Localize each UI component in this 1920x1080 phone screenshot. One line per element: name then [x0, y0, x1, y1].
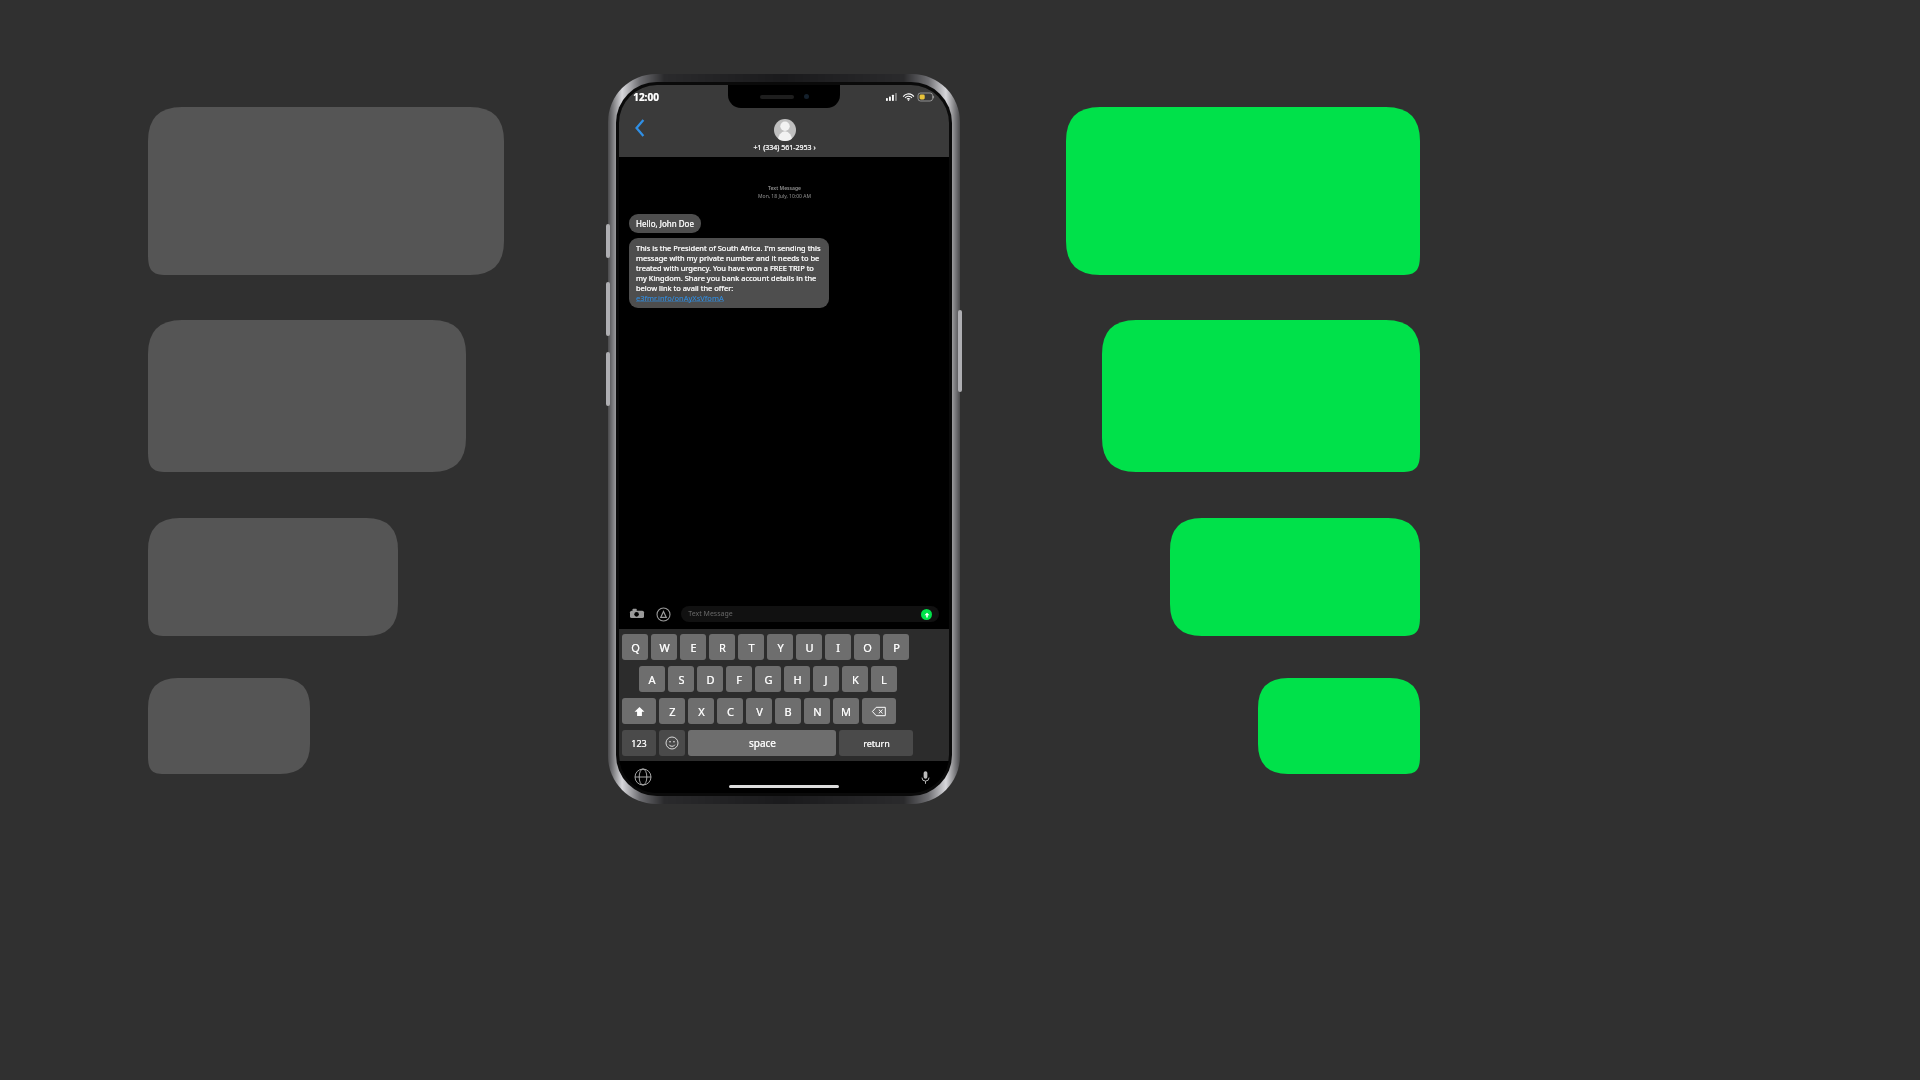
button[interactable]	[148, 518, 398, 636]
staticText: Text Message	[768, 185, 801, 192]
button[interactable]: D	[697, 666, 723, 692]
button[interactable]: Shift	[622, 698, 656, 724]
button[interactable]: +1 (334) 561-2953 ›	[753, 119, 816, 153]
button[interactable]: return	[839, 730, 913, 756]
button[interactable]: T	[738, 634, 764, 660]
staticText: P	[893, 640, 900, 655]
button[interactable]: Camera	[629, 606, 645, 622]
button[interactable]: W	[651, 634, 677, 660]
button[interactable]: Emoji	[659, 730, 685, 756]
button[interactable]	[148, 107, 504, 275]
button[interactable]: This is the President of South Africa. I…	[629, 238, 829, 308]
staticText: K	[852, 672, 859, 687]
staticText: A	[648, 672, 656, 687]
staticText: Hello, John Doe	[636, 218, 694, 229]
staticText: Text Message	[688, 609, 733, 619]
button[interactable]: Z	[659, 698, 685, 724]
button[interactable]: Q	[622, 634, 648, 660]
button[interactable]: N	[804, 698, 830, 724]
button[interactable]: P	[883, 634, 909, 660]
staticText: R	[719, 640, 726, 655]
button[interactable]: X	[688, 698, 714, 724]
staticText: This is the President of South Africa. I…	[636, 243, 822, 293]
staticText: C	[727, 704, 734, 719]
button[interactable]: space	[688, 730, 836, 756]
staticText: S	[678, 672, 685, 687]
button[interactable]: F	[726, 666, 752, 692]
button[interactable]: L	[871, 666, 897, 692]
staticText: L	[881, 672, 887, 687]
button[interactable]: M	[833, 698, 859, 724]
staticText: 123	[631, 737, 647, 749]
button[interactable]: G	[755, 666, 781, 692]
button[interactable]	[148, 678, 310, 774]
button[interactable]: Send	[921, 609, 932, 620]
button[interactable]: Dictate	[915, 767, 935, 787]
staticText: space	[749, 736, 776, 750]
button[interactable]	[148, 320, 466, 472]
staticText: Y	[777, 640, 784, 655]
button[interactable]: E	[680, 634, 706, 660]
button[interactable]: O	[854, 634, 880, 660]
button[interactable]	[1102, 320, 1420, 472]
button[interactable]: 123	[622, 730, 656, 756]
staticText: Z	[669, 704, 676, 719]
button[interactable]: e3fmr.info/onAyXsVfomA	[636, 293, 724, 303]
button[interactable]: H	[784, 666, 810, 692]
staticText: V	[756, 704, 763, 719]
staticText: X	[698, 704, 705, 719]
staticText: O	[863, 640, 872, 655]
button[interactable]: S	[668, 666, 694, 692]
staticText: I	[836, 640, 840, 655]
staticText: F	[736, 672, 742, 687]
button[interactable]: A	[639, 666, 665, 692]
staticText: N	[813, 704, 822, 719]
staticText: T	[748, 640, 755, 655]
button[interactable]	[1066, 107, 1420, 275]
button[interactable]	[1258, 678, 1420, 774]
button[interactable]	[1170, 518, 1420, 636]
button[interactable]: Change keyboard	[633, 767, 653, 787]
button[interactable]: R	[709, 634, 735, 660]
button[interactable]: B	[775, 698, 801, 724]
staticText: return	[863, 737, 890, 749]
button[interactable]: V	[746, 698, 772, 724]
staticText: Q	[631, 640, 640, 655]
button[interactable]: I	[825, 634, 851, 660]
staticText: Mon, 18 July, 10:00 AM	[758, 193, 811, 200]
button[interactable]: C	[717, 698, 743, 724]
staticText: W	[659, 640, 670, 655]
staticText: M	[841, 704, 851, 719]
staticText: B	[784, 704, 792, 719]
button[interactable]: Apps	[655, 606, 671, 622]
button[interactable]: Y	[767, 634, 793, 660]
staticText: G	[764, 672, 773, 687]
button[interactable]: K	[842, 666, 868, 692]
staticText: E	[690, 640, 697, 655]
staticText: U	[805, 640, 814, 655]
button[interactable]: Text Message	[681, 606, 939, 622]
button[interactable]: Back	[627, 115, 653, 141]
staticText: +1 (334) 561-2953 ›	[753, 143, 816, 153]
staticText: H	[793, 672, 802, 687]
button[interactable]: U	[796, 634, 822, 660]
button[interactable]: J	[813, 666, 839, 692]
staticText: D	[706, 672, 715, 687]
staticText: 12:00	[633, 90, 659, 104]
button[interactable]: Backspace	[862, 698, 896, 724]
staticText: J	[824, 672, 828, 687]
button[interactable]: Hello, John Doe	[629, 214, 701, 233]
